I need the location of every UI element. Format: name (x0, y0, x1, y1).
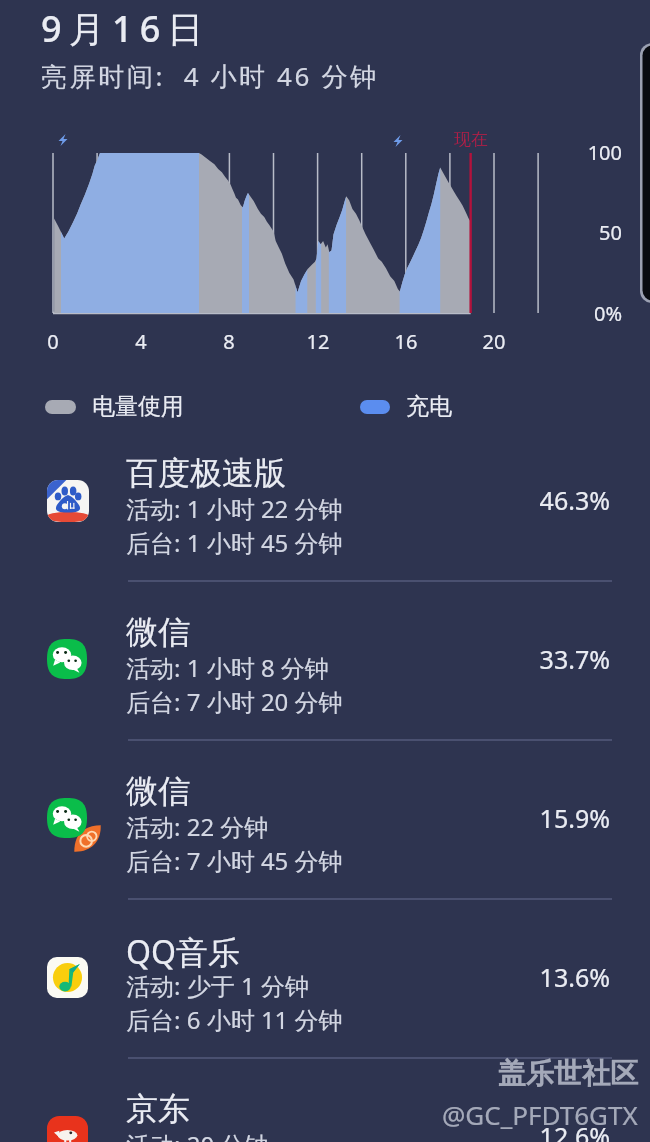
staticText: 后台: 1 小时 45 分钟 (126, 526, 343, 559)
staticText: 4 (116, 328, 166, 355)
staticText: 亮屏时间: 4 小时 46 分钟 (41, 58, 379, 94)
staticText: 盖乐世社区 (498, 1056, 638, 1091)
staticText: 现在 (454, 129, 488, 150)
button[interactable]: 充电 (360, 392, 452, 421)
staticText: 后台: 7 小时 45 分钟 (126, 844, 343, 877)
button[interactable]: QQ音乐 (0, 900, 650, 1059)
staticText: 8 (204, 328, 254, 355)
button[interactable]: 微信 (0, 741, 650, 900)
staticText: 后台: 6 小时 11 分钟 (126, 1003, 343, 1036)
staticText: 活动: 1 小时 8 分钟 (126, 651, 329, 684)
staticText: 活动: 少于 1 分钟 (126, 969, 309, 1002)
staticText: 活动: 22 分钟 (126, 810, 269, 843)
staticText: 电量使用 (92, 392, 184, 421)
staticText: QQ音乐 (126, 930, 240, 974)
staticText: 充电 (406, 392, 452, 421)
staticText: 9月16日 (41, 4, 211, 53)
staticText: 33.7% (470, 642, 610, 676)
staticText: 12.6% (470, 1119, 610, 1142)
staticText: 百度极速版 (126, 453, 286, 493)
button[interactable]: 微信 (0, 582, 650, 741)
staticText: 活动: 20 分钟 (126, 1128, 269, 1142)
button[interactable]: 京东 (0, 1059, 650, 1142)
button[interactable]: 百度极速版 (0, 423, 650, 582)
staticText: 15.9% (470, 801, 610, 835)
staticText: 0% (542, 300, 622, 327)
staticText: 13.6% (470, 960, 610, 994)
staticText: 50 (542, 219, 622, 246)
staticText: 活动: 1 小时 22 分钟 (126, 492, 343, 525)
staticText: 46.3% (470, 483, 610, 517)
button[interactable]: 电量使用 (45, 392, 184, 421)
staticText: @GC_PFDT6GTX (442, 1097, 638, 1132)
staticText: 100 (542, 139, 622, 166)
staticText: 微信 (126, 612, 190, 652)
staticText: 16 (381, 328, 431, 355)
staticText: 20 (469, 328, 519, 355)
staticText: 后台: 7 小时 20 分钟 (126, 685, 343, 718)
staticText: 0 (28, 328, 78, 355)
staticText: 京东 (126, 1089, 190, 1129)
staticText: 微信 (126, 771, 190, 811)
staticText: 12 (293, 328, 343, 355)
